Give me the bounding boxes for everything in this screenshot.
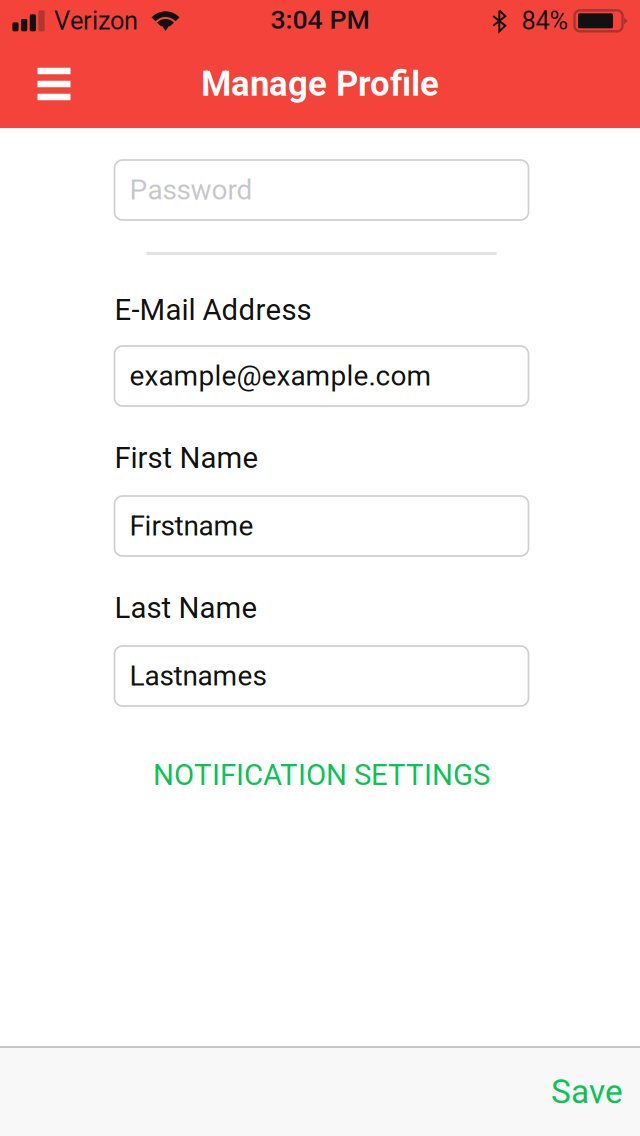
- staticText: Save: [551, 1072, 623, 1111]
- staticText: Password: [129, 174, 252, 206]
- staticText: Manage Profile: [201, 64, 439, 104]
- button[interactable]: example@example.com: [114, 346, 528, 406]
- button[interactable]: Password: [114, 160, 528, 220]
- button[interactable]: Lastnames: [114, 646, 528, 706]
- staticText: Lastnames: [129, 660, 266, 692]
- button[interactable]: NOTIFICATION SETTINGS: [114, 751, 528, 799]
- button[interactable]: Save: [551, 1048, 640, 1136]
- staticText: NOTIFICATION SETTINGS: [153, 758, 490, 792]
- staticText: 3:04 PM: [270, 4, 369, 35]
- button[interactable]: Firstname: [114, 496, 528, 556]
- button[interactable]: Menu: [22, 40, 86, 128]
- staticText: Firstname: [129, 510, 253, 542]
- staticText: Last Name: [114, 591, 257, 625]
- staticText: example@example.com: [129, 360, 431, 392]
- staticText: First Name: [114, 441, 258, 475]
- staticText: E-Mail Address: [114, 293, 311, 327]
- staticText: 84%: [521, 6, 568, 36]
- staticText: Verizon: [54, 6, 138, 36]
